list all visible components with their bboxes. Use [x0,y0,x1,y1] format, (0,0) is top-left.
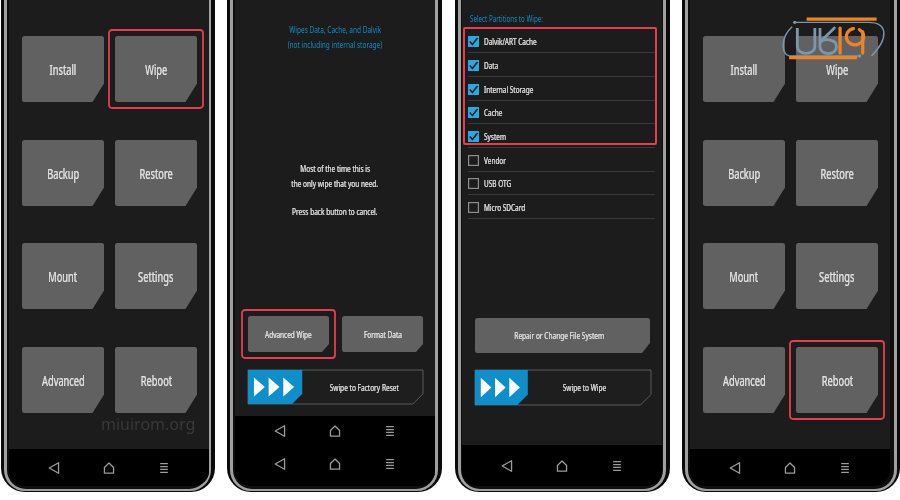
button[interactable]: Swipe to Factory Reset [248,370,423,404]
button[interactable]: Restore [796,140,878,206]
button[interactable]: Advanced [22,347,104,413]
button[interactable]: Home [321,450,349,478]
staticText: (not including internal storage) [288,39,382,51]
staticText: Wipe [826,59,849,79]
staticText: Most of the time this is [300,163,371,175]
button[interactable]: Repair or Change File System [475,318,650,353]
button[interactable]: Home [95,454,123,482]
button[interactable]: Recents [376,417,404,445]
button[interactable]: Home [548,452,576,480]
button[interactable]: Micro SDCard [462,195,662,219]
button[interactable]: Mount [703,243,785,309]
button[interactable]: Home [321,417,349,445]
staticText: Install [50,59,76,79]
button[interactable]: Recents [150,454,178,482]
button[interactable]: System [462,124,662,148]
staticText: Swipe to Wipe [563,381,606,394]
staticText: Restore [139,163,173,183]
button[interactable]: Data [462,53,662,77]
staticText: Advanced [42,370,85,390]
button[interactable]: Back [493,452,521,480]
staticText: Backup [47,163,80,183]
button[interactable]: Reboot [796,347,878,413]
staticText: Cache [484,106,503,119]
button[interactable]: Back [266,417,294,445]
button[interactable]: Backup [22,140,104,206]
button[interactable]: USB OTG [462,171,662,195]
button[interactable]: Swipe to Wipe [475,370,651,405]
button[interactable]: Wipe [796,36,878,102]
button[interactable]: Vendor [462,148,662,172]
staticText: the only wipe that you need. [291,178,379,190]
staticText: Backup [728,163,761,183]
staticText: Settings [138,266,174,286]
staticText: Advanced Wipe [265,328,312,341]
button[interactable]: Wipe [115,36,197,102]
staticText: Vendor [484,154,506,167]
staticText: Data [484,59,499,72]
staticText: Wipe [145,59,168,79]
staticText: Dalvik/ART Cache [484,35,537,48]
button[interactable]: Format Data [342,316,423,352]
staticText: Format Data [364,328,402,341]
button[interactable]: Mount [22,243,104,309]
staticText: Select Partitions to Wipe: [470,12,544,24]
button[interactable]: Back [40,454,68,482]
button[interactable]: Recents [603,452,631,480]
staticText: System [484,130,506,143]
button[interactable]: Backup [703,140,785,206]
staticText: Mount [729,266,759,286]
button[interactable]: Internal Storage [462,77,662,101]
staticText: Repair or Change File System [514,329,605,342]
button[interactable]: Advanced Wipe [248,316,329,352]
staticText: Press back button to cancel. [292,206,378,218]
button[interactable]: Restore [115,140,197,206]
staticText: Advanced [723,370,766,390]
button[interactable]: Reboot [115,347,197,413]
button[interactable]: Back [266,450,294,478]
staticText: Restore [820,163,854,183]
button[interactable]: Cache [462,100,662,124]
button[interactable]: Settings [796,243,878,309]
staticText: Internal Storage [484,83,534,96]
button[interactable]: Dalvik/ART Cache [462,29,662,53]
staticText: Reboot [822,370,853,390]
button[interactable]: Recents [831,454,859,482]
button[interactable]: Settings [115,243,197,309]
staticText: Swipe to Factory Reset [330,381,399,394]
button[interactable]: Back [721,454,749,482]
button[interactable]: Advanced [703,347,785,413]
staticText: Wipes Data, Cache, and Dalvik [289,24,382,36]
button[interactable]: Install [22,36,104,102]
staticText: miuirom.org [101,413,196,435]
staticText: Install [731,59,757,79]
button[interactable]: Install [703,36,785,102]
button[interactable]: Home [776,454,804,482]
button[interactable]: Recents [376,450,404,478]
staticText: Reboot [141,370,172,390]
staticText: Mount [48,266,78,286]
staticText: Micro SDCard [484,201,525,214]
staticText: Settings [819,266,855,286]
staticText: USB OTG [484,177,511,190]
